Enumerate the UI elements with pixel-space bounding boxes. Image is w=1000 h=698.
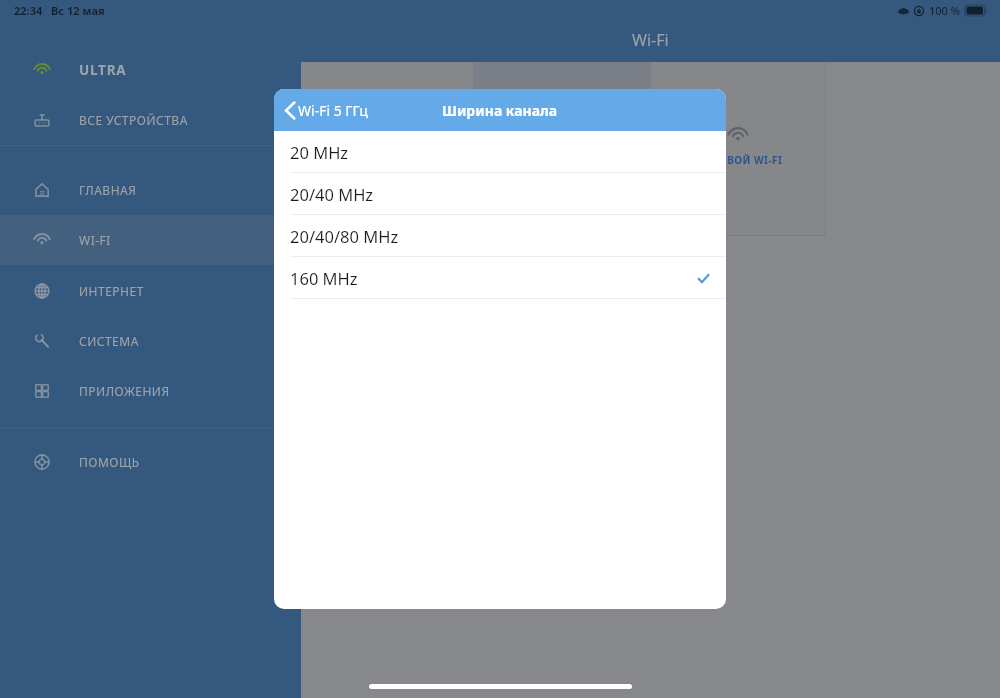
staticText: ИНТЕРНЕТ [79,283,144,299]
staticText: 20/40 MHz [290,183,374,205]
button[interactable]: ВСЕ УСТРОЙСТВА [0,95,301,145]
button[interactable]: СИСТЕМА [0,316,301,366]
button[interactable] [473,62,651,235]
staticText: 160 MHz [290,267,358,289]
staticText: ГЛАВНАЯ [79,182,137,198]
button[interactable]: Wi-Fi 5 ГГц [274,89,378,131]
staticText: ПРИЛОЖЕНИЯ [79,383,170,399]
button[interactable]: 20/40/80 MHz [274,215,726,257]
staticText: ГОСТЕВОЙ WI-FI [694,153,783,167]
staticText: WI-FI [79,232,111,248]
staticText: Ширина канала [442,101,558,120]
button[interactable]: ГОСТЕВОЙ WI-FI [651,62,825,235]
staticText: 20/40/80 MHz [290,225,399,247]
staticText: 20 MHz [290,141,349,163]
other: Selected [698,274,709,283]
button[interactable] [301,62,473,235]
button[interactable]: 160 MHz [274,257,726,299]
button[interactable]: ИНТЕРНЕТ [0,266,301,316]
button[interactable]: ПРИЛОЖЕНИЯ [0,366,301,416]
staticText: Wi-Fi [632,29,669,51]
staticText: Вс 12 мая [51,3,105,18]
button[interactable]: ULTRA [0,45,301,95]
button[interactable]: WI-FI [0,215,301,265]
staticText: 22:34 [14,3,43,18]
staticText: ВСЕ УСТРОЙСТВА [79,112,188,128]
staticText: 100 % [929,3,961,18]
other: Orientation lock [914,6,924,16]
staticText: ULTRA [79,61,127,79]
button[interactable]: 20/40 MHz [274,173,726,215]
staticText: ПОМОЩЬ [79,454,140,470]
button[interactable]: 20 MHz [274,131,726,173]
button[interactable]: ГЛАВНАЯ [0,165,301,215]
staticText: СИСТЕМА [79,333,139,349]
staticText: Wi-Fi 5 ГГц [298,101,368,120]
button[interactable]: ПОМОЩЬ [0,437,301,487]
